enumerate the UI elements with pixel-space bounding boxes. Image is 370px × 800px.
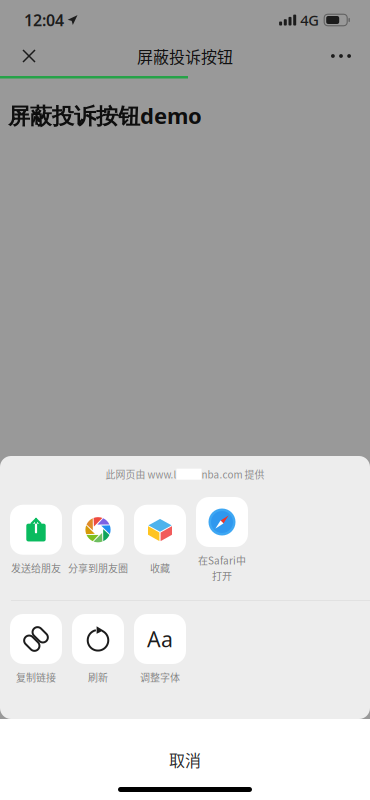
button[interactable]: 收藏	[129, 505, 191, 575]
button[interactable]: 在Safari中	[191, 497, 253, 583]
staticText: 12:04	[24, 9, 64, 31]
staticText: 取消	[169, 748, 201, 771]
staticText: 4G	[300, 10, 319, 30]
staticText: 分享到朋友圈	[68, 561, 128, 575]
staticText: 打开	[212, 568, 232, 583]
button[interactable]: Close	[7, 40, 51, 72]
staticText: 刷新	[88, 670, 108, 684]
button[interactable]: Aa	[129, 614, 191, 684]
staticText: Aa	[147, 625, 173, 653]
staticText: 屏蔽投诉按钮	[137, 44, 233, 68]
staticText: 此网页由 www.l	[105, 467, 176, 481]
staticText: nba.com 提供	[201, 467, 264, 481]
button[interactable]: 取消	[0, 719, 370, 800]
staticText: 屏蔽投诉按钮demo	[8, 100, 202, 130]
button[interactable]: More	[319, 40, 363, 72]
button[interactable]: 分享到朋友圈	[67, 505, 129, 575]
button[interactable]: 发送给朋友	[5, 505, 67, 575]
button[interactable]: 刷新	[67, 614, 129, 684]
staticText: 调整字体	[140, 670, 180, 684]
staticText: 在Safari中	[198, 553, 246, 567]
staticText: 复制链接	[16, 670, 56, 684]
button[interactable]: 复制链接	[5, 614, 67, 684]
staticText: 收藏	[150, 561, 170, 575]
staticText: 发送给朋友	[11, 561, 61, 575]
